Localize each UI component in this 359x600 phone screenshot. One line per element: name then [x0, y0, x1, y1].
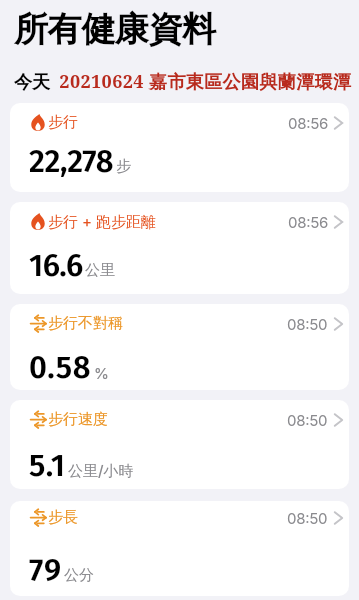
staticText: 步行 + 跑步距離 [48, 212, 157, 231]
staticText: 步 [116, 157, 131, 176]
staticText: 步行 [48, 113, 78, 132]
button[interactable]: 步行不對稱 [10, 304, 349, 390]
staticText: 步行不對稱 [48, 314, 123, 333]
staticText: 08:56 [288, 114, 328, 132]
button[interactable]: 步行 + 跑步距離 [10, 202, 349, 294]
staticText: 08:50 [287, 411, 328, 429]
staticText: 所有健康資料 [14, 8, 216, 51]
staticText: 公分 [64, 566, 94, 585]
staticText: 08:50 [287, 315, 328, 333]
button[interactable]: 步行 [10, 103, 349, 192]
staticText: 公里/小時 [68, 461, 134, 480]
staticText: 08:50 [287, 509, 328, 527]
staticText: 0.58 [29, 349, 92, 386]
staticText: 08:56 [288, 213, 328, 231]
staticText: 公里 [85, 261, 115, 280]
staticText: 79 [29, 552, 62, 589]
staticText: 5.1 [29, 447, 66, 484]
staticText: 今天 20210624 嘉市東區公園與蘭潭環潭 [14, 69, 352, 94]
staticText: 22,278 [29, 143, 114, 180]
staticText: 16.6 [29, 247, 83, 284]
button[interactable]: 步長 [10, 501, 349, 596]
staticText: % [94, 364, 109, 382]
staticText: 步行速度 [48, 410, 108, 429]
button[interactable]: 步行速度 [10, 400, 349, 489]
staticText: 步長 [48, 508, 78, 527]
